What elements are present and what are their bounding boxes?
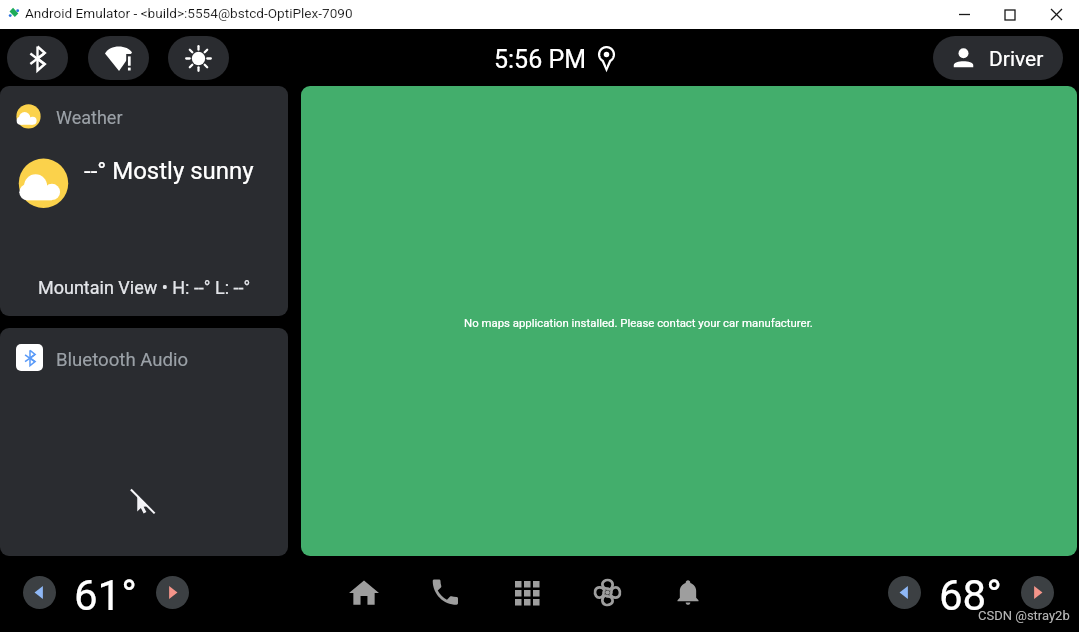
button[interactable]: Increase driver temperature: [156, 576, 189, 609]
staticText: Mountain View • H: --° L: --°: [38, 277, 251, 298]
staticText: 61°: [74, 571, 137, 620]
button[interactable]: Brightness: [168, 36, 229, 80]
button[interactable]: Phone: [423, 570, 467, 614]
staticText: Bluetooth Audio: [56, 349, 189, 371]
staticText: No maps application installed. Please co…: [464, 316, 813, 329]
button[interactable]: Bluetooth: [7, 36, 68, 80]
button[interactable]: Wi-Fi: [88, 36, 149, 80]
button[interactable]: Bluetooth Audio: [0, 328, 288, 556]
staticText: 68°: [939, 571, 1002, 620]
staticText: 5:56 PM: [494, 45, 587, 74]
staticText: --° Mostly sunny: [84, 157, 254, 185]
button[interactable]: Apps: [504, 570, 548, 614]
staticText: CSDN @stray2b: [978, 608, 1070, 623]
button[interactable]: Driver: [933, 36, 1063, 80]
button[interactable]: Close: [1033, 0, 1079, 29]
staticText: Weather: [56, 107, 123, 128]
button[interactable]: Minimize: [941, 0, 987, 29]
button[interactable]: Decrease passenger temperature: [888, 576, 921, 609]
staticText: Driver: [989, 47, 1044, 72]
button[interactable]: Location: [598, 46, 615, 70]
staticText: Android Emulator - <build>:5554@bstcd-Op…: [25, 5, 353, 21]
button[interactable]: Home: [342, 570, 386, 614]
button[interactable]: Climate: [585, 570, 629, 614]
button[interactable]: Weather: [0, 86, 288, 316]
button[interactable]: Increase passenger temperature: [1021, 576, 1054, 609]
button[interactable]: Maximize: [987, 0, 1033, 29]
button[interactable]: Notifications: [666, 570, 710, 614]
button[interactable]: No maps application installed. Please co…: [301, 86, 1077, 556]
button[interactable]: Decrease driver temperature: [23, 576, 56, 609]
